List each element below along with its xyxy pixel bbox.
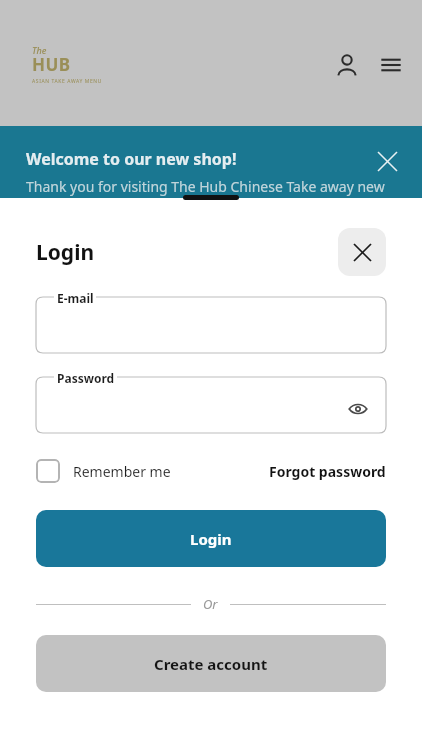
button[interactable]: Remember me: [36, 459, 171, 483]
staticText: Create account: [154, 654, 268, 674]
staticText: Login: [190, 529, 232, 549]
button[interactable]: Create account: [36, 635, 386, 692]
staticText: The: [32, 44, 47, 56]
staticText: Or: [203, 595, 218, 613]
staticText: Thank you for visiting The Hub Chinese T…: [26, 177, 385, 196]
staticText: HUB: [32, 53, 71, 76]
staticText: Password: [57, 370, 115, 386]
button[interactable]: Login: [36, 510, 386, 567]
button[interactable]: Account: [330, 48, 364, 82]
staticText: E-mail: [57, 290, 94, 306]
staticText: Welcome to our new shop!: [26, 148, 237, 170]
button[interactable]: E-mail: [36, 297, 386, 353]
button[interactable]: Menu: [374, 48, 408, 82]
button[interactable]: Password: [36, 377, 386, 433]
staticText: Forgot password: [269, 462, 386, 481]
button[interactable]: Show password: [344, 395, 372, 423]
staticText: ASIAN TAKE AWAY MENU: [32, 78, 102, 85]
button[interactable]: Close banner: [372, 146, 402, 176]
button[interactable]: Forgot password: [269, 462, 386, 481]
button[interactable]: The: [32, 44, 102, 86]
staticText: Remember me: [73, 462, 171, 481]
staticText: Login: [36, 238, 338, 267]
button[interactable]: Close: [338, 228, 386, 276]
